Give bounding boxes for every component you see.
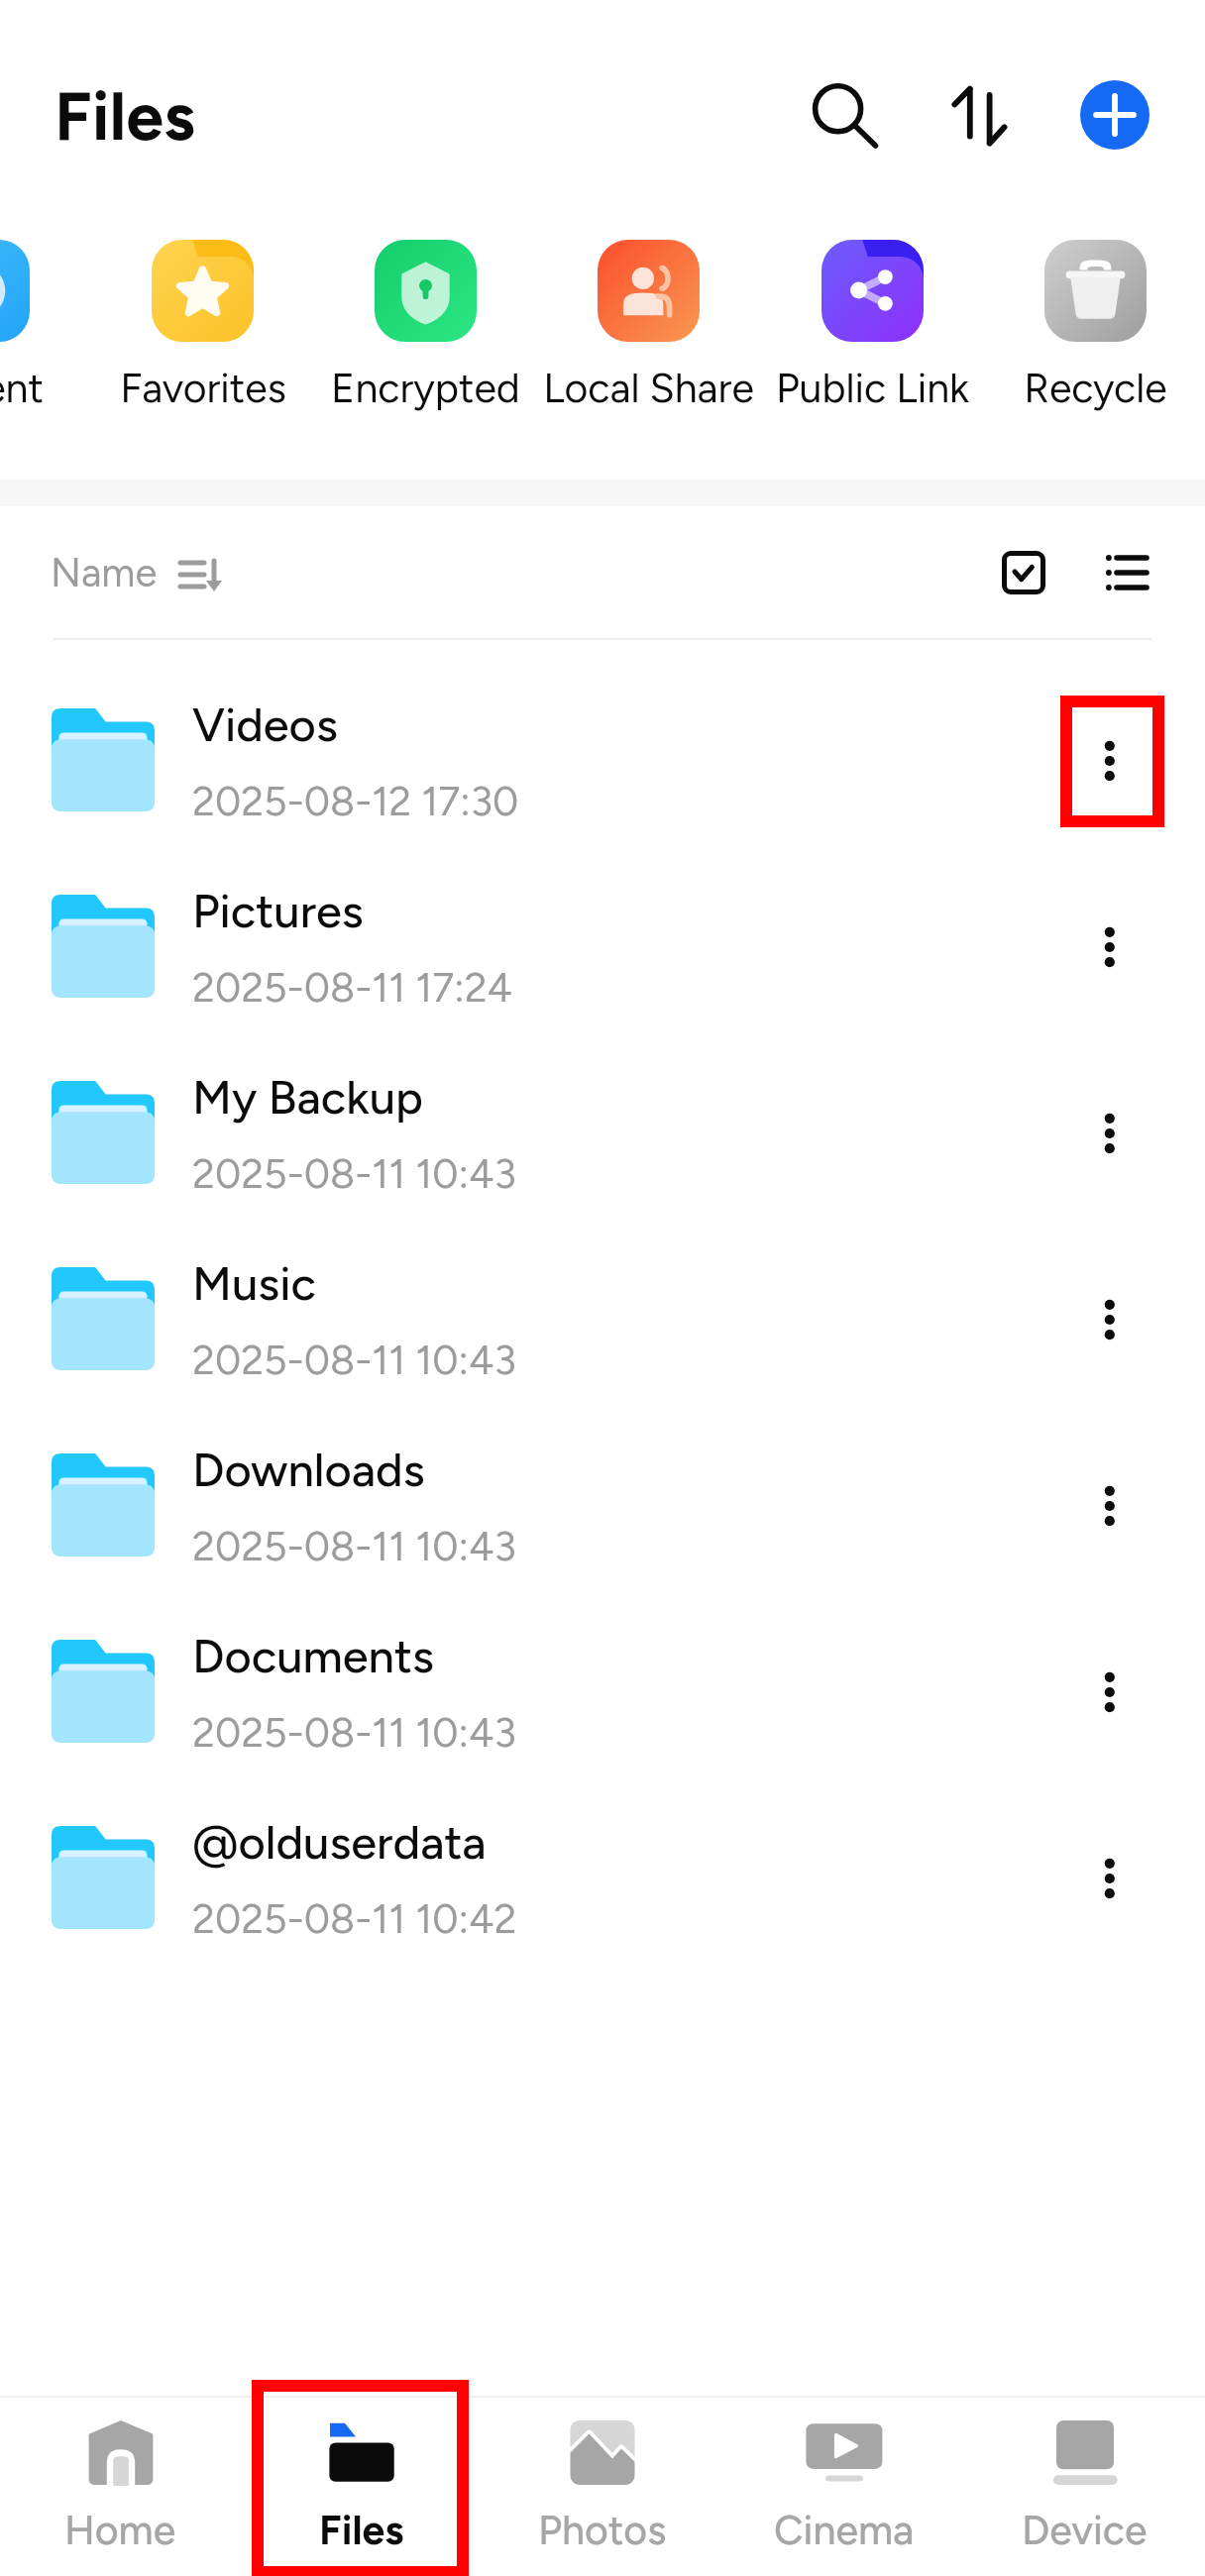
staticText: Recycle: [1024, 364, 1167, 412]
button[interactable]: More options: [1062, 1450, 1155, 1544]
staticText: Device: [1022, 2506, 1148, 2554]
button[interactable]: Favorites: [92, 240, 313, 412]
button[interactable]: Cinema: [723, 2398, 964, 2576]
button[interactable]: More options: [1062, 1078, 1155, 1171]
staticText: Recent: [0, 364, 44, 412]
button[interactable]: My Backup: [0, 1039, 1205, 1226]
staticText: Public Link: [776, 364, 969, 412]
staticText: Files: [319, 2506, 404, 2554]
button[interactable]: Recycle: [985, 240, 1205, 412]
staticText: 2025-08-11 10:43: [192, 1708, 516, 1757]
button[interactable]: Name: [51, 536, 224, 603]
staticText: Pictures: [192, 883, 364, 938]
button[interactable]: Sort order: [931, 59, 1031, 159]
button[interactable]: Home: [0, 2398, 241, 2576]
staticText: Name: [51, 549, 158, 596]
staticText: 2025-08-11 10:43: [192, 1149, 516, 1198]
staticText: Music: [192, 1255, 316, 1311]
button[interactable]: Files: [241, 2398, 482, 2576]
staticText: Home: [64, 2506, 176, 2554]
staticText: Videos: [192, 697, 338, 752]
button[interactable]: Music: [0, 1226, 1205, 1412]
staticText: @olduserdata: [192, 1814, 487, 1870]
button[interactable]: Add: [1080, 80, 1150, 150]
button[interactable]: Switch view: [1083, 528, 1172, 617]
staticText: 2025-08-11 10:43: [192, 1522, 516, 1570]
staticText: Photos: [538, 2506, 667, 2554]
button[interactable]: Documents: [0, 1598, 1205, 1784]
button[interactable]: Public Link: [762, 240, 983, 412]
staticText: Downloads: [192, 1442, 425, 1497]
staticText: 2025-08-11 10:42: [192, 1894, 517, 1943]
button[interactable]: Recent: [0, 240, 89, 412]
button[interactable]: More options: [1062, 1637, 1155, 1730]
staticText: 2025-08-11 17:24: [192, 963, 513, 1012]
button[interactable]: Search: [783, 54, 894, 165]
button[interactable]: More options: [1062, 705, 1155, 799]
staticText: My Backup: [192, 1069, 423, 1125]
button[interactable]: Local Share: [538, 240, 759, 412]
staticText: Cinema: [774, 2506, 915, 2554]
button[interactable]: @olduserdata: [0, 1784, 1205, 1971]
staticText: Local Share: [543, 364, 754, 412]
button[interactable]: More options: [1062, 1264, 1155, 1357]
staticText: 2025-08-12 17:30: [192, 777, 519, 825]
staticText: 2025-08-11 10:43: [192, 1336, 516, 1384]
button[interactable]: More options: [1062, 1823, 1155, 1916]
button[interactable]: More options: [1062, 892, 1155, 985]
staticText: Documents: [192, 1628, 434, 1683]
staticText: Files: [55, 75, 195, 157]
button[interactable]: Pictures: [0, 853, 1205, 1039]
button[interactable]: Downloads: [0, 1412, 1205, 1598]
button[interactable]: Encrypted: [315, 240, 536, 412]
button[interactable]: Device: [964, 2398, 1205, 2576]
button[interactable]: Videos: [0, 667, 1205, 853]
staticText: Favorites: [120, 364, 286, 412]
button[interactable]: Select all: [979, 528, 1068, 617]
button[interactable]: Photos: [482, 2398, 722, 2576]
staticText: Encrypted: [331, 364, 520, 412]
